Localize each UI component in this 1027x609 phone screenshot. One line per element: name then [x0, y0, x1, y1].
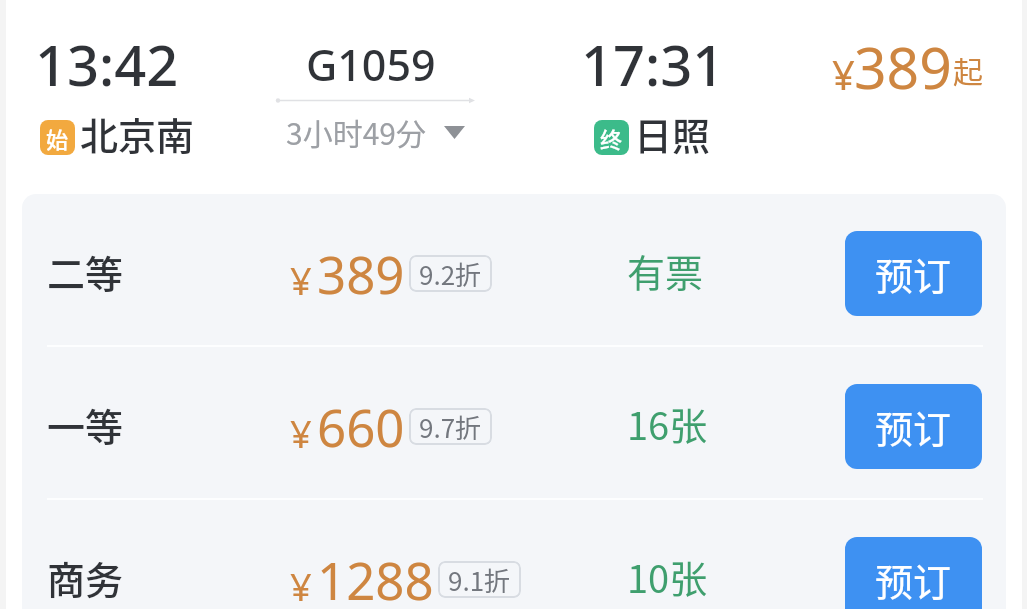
button[interactable]: 预订: [845, 537, 982, 609]
staticText: 预订: [875, 399, 952, 454]
staticText: 17:31: [581, 26, 725, 102]
staticText: 预订: [875, 552, 952, 607]
staticText: ¥: [290, 560, 312, 609]
staticText: 660: [317, 392, 405, 461]
staticText: ¥: [290, 407, 312, 459]
button[interactable]: 商务: [22, 500, 1006, 609]
staticText: 始: [46, 122, 69, 154]
staticText: 1288: [317, 545, 434, 609]
staticText: 预订: [875, 246, 952, 301]
button[interactable]: Show schedule details: [436, 114, 473, 150]
staticText: 389: [317, 239, 405, 308]
staticText: 一等: [47, 397, 124, 452]
staticText: 10张: [627, 549, 708, 604]
staticText: G1059: [306, 35, 436, 94]
staticText: 3小时49分: [286, 110, 426, 153]
staticText: 13:42: [35, 26, 179, 102]
button[interactable]: 一等: [22, 347, 1006, 498]
staticText: 起: [953, 48, 983, 91]
staticText: 9.7折: [419, 408, 482, 445]
staticText: 北京南: [80, 106, 195, 161]
staticText: 商务: [47, 550, 124, 605]
staticText: 9.1折: [448, 561, 511, 598]
staticText: 有票: [627, 243, 704, 298]
staticText: 389: [854, 28, 952, 106]
staticText: ¥: [832, 47, 855, 101]
staticText: 日照: [634, 106, 711, 161]
staticText: 二等: [47, 244, 124, 299]
staticText: 9.2折: [419, 255, 482, 292]
staticText: ¥: [290, 254, 312, 306]
staticText: 终: [600, 122, 623, 154]
button[interactable]: 预订: [845, 231, 982, 316]
button[interactable]: 预订: [845, 384, 982, 469]
button[interactable]: 二等: [22, 194, 1006, 345]
staticText: 16张: [627, 396, 708, 451]
